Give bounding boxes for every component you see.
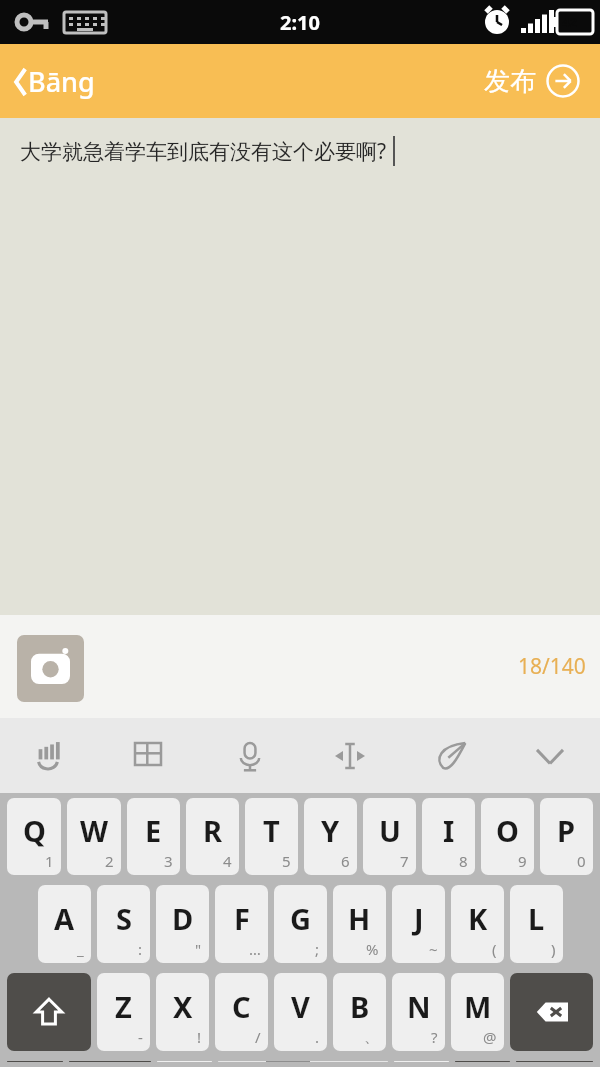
button[interactable]: Backspace	[510, 973, 593, 1051]
button[interactable]: Layout	[100, 718, 200, 793]
button[interactable]: W	[67, 798, 121, 875]
staticText: /	[255, 1027, 261, 1047]
button[interactable]: Hide keyboard	[500, 718, 600, 793]
button[interactable]: C	[215, 973, 268, 1051]
button[interactable]: U	[363, 798, 416, 875]
button[interactable]: D	[156, 885, 209, 963]
staticText: 0	[577, 851, 586, 871]
staticText: 3	[164, 851, 173, 871]
button[interactable]: Space	[218, 1061, 388, 1062]
button[interactable]: Shift	[7, 973, 91, 1051]
staticText: 7	[400, 851, 409, 871]
staticText: R	[203, 811, 223, 850]
staticText: C	[232, 987, 251, 1026]
staticText: A	[54, 899, 75, 938]
button[interactable]: A	[38, 885, 91, 963]
staticText: N	[407, 987, 431, 1026]
staticText: 2:10	[280, 9, 320, 36]
button[interactable]: K	[451, 885, 504, 963]
staticText: 8	[459, 851, 468, 871]
button[interactable]: Move cursor	[300, 718, 400, 793]
staticText: 发布	[484, 65, 536, 98]
staticText: P	[557, 811, 576, 850]
staticText: B	[350, 987, 370, 1026]
staticText: ~	[429, 939, 438, 959]
staticText: I	[443, 811, 455, 850]
button[interactable]: Theme	[400, 718, 500, 793]
button[interactable]: Back to Bang	[8, 57, 101, 106]
button[interactable]: Z	[97, 973, 150, 1051]
button[interactable]: 发布	[478, 58, 586, 104]
staticText: K	[468, 899, 488, 938]
button[interactable]: Y	[304, 798, 357, 875]
staticText: Y	[321, 811, 340, 850]
button[interactable]: G	[274, 885, 327, 963]
staticText: O	[496, 811, 519, 850]
staticText: V	[291, 987, 310, 1026]
button[interactable]: Handwriting	[0, 718, 100, 793]
button[interactable]: Add photo	[17, 635, 84, 702]
staticText: 、	[364, 1028, 379, 1047]
button[interactable]: V	[274, 973, 327, 1051]
staticText: -	[138, 1027, 143, 1047]
staticText: Q	[23, 811, 46, 850]
button[interactable]: O	[481, 798, 534, 875]
staticText: X	[173, 987, 193, 1026]
button[interactable]: N	[392, 973, 445, 1051]
staticText: M	[464, 987, 492, 1026]
staticText: (	[492, 939, 497, 959]
button[interactable]: Q	[7, 798, 61, 875]
button[interactable]: Voice input	[200, 718, 300, 793]
button[interactable]: X	[156, 973, 209, 1051]
staticText: D	[172, 899, 194, 938]
staticText: !	[197, 1027, 202, 1047]
staticText: H	[348, 899, 371, 938]
staticText: ?	[431, 1027, 438, 1047]
staticText: )	[551, 939, 556, 959]
button[interactable]: R	[186, 798, 239, 875]
staticText: U	[379, 811, 401, 850]
button[interactable]: E	[127, 798, 180, 875]
staticText: Z	[115, 987, 132, 1026]
staticText: J	[414, 899, 424, 938]
staticText: 大学就急着学车到底有没有这个必要啊?	[20, 137, 387, 166]
staticText: 5	[282, 851, 291, 871]
staticText: S	[116, 899, 132, 938]
button[interactable]: J	[392, 885, 445, 963]
button[interactable]: B	[333, 973, 386, 1051]
button[interactable]: L	[510, 885, 563, 963]
button[interactable]: P	[540, 798, 593, 875]
button[interactable]: H	[333, 885, 386, 963]
staticText: F	[234, 899, 250, 938]
staticText: 2	[105, 851, 114, 871]
staticText: 1	[45, 851, 54, 871]
button[interactable]: I	[422, 798, 475, 875]
staticText: E	[145, 811, 162, 850]
button[interactable]: S	[97, 885, 150, 963]
staticText: %	[366, 939, 379, 959]
staticText: 4	[223, 851, 232, 871]
staticText: ;	[315, 939, 320, 959]
button[interactable]: M	[451, 973, 504, 1051]
staticText: @	[483, 1027, 497, 1047]
staticText: T	[263, 811, 280, 850]
button[interactable]: T	[245, 798, 298, 875]
staticText: _	[77, 939, 84, 959]
button[interactable]: F	[215, 885, 268, 963]
staticText: W	[80, 811, 109, 850]
staticText: .	[315, 1027, 320, 1047]
staticText: 18/140	[518, 652, 586, 681]
